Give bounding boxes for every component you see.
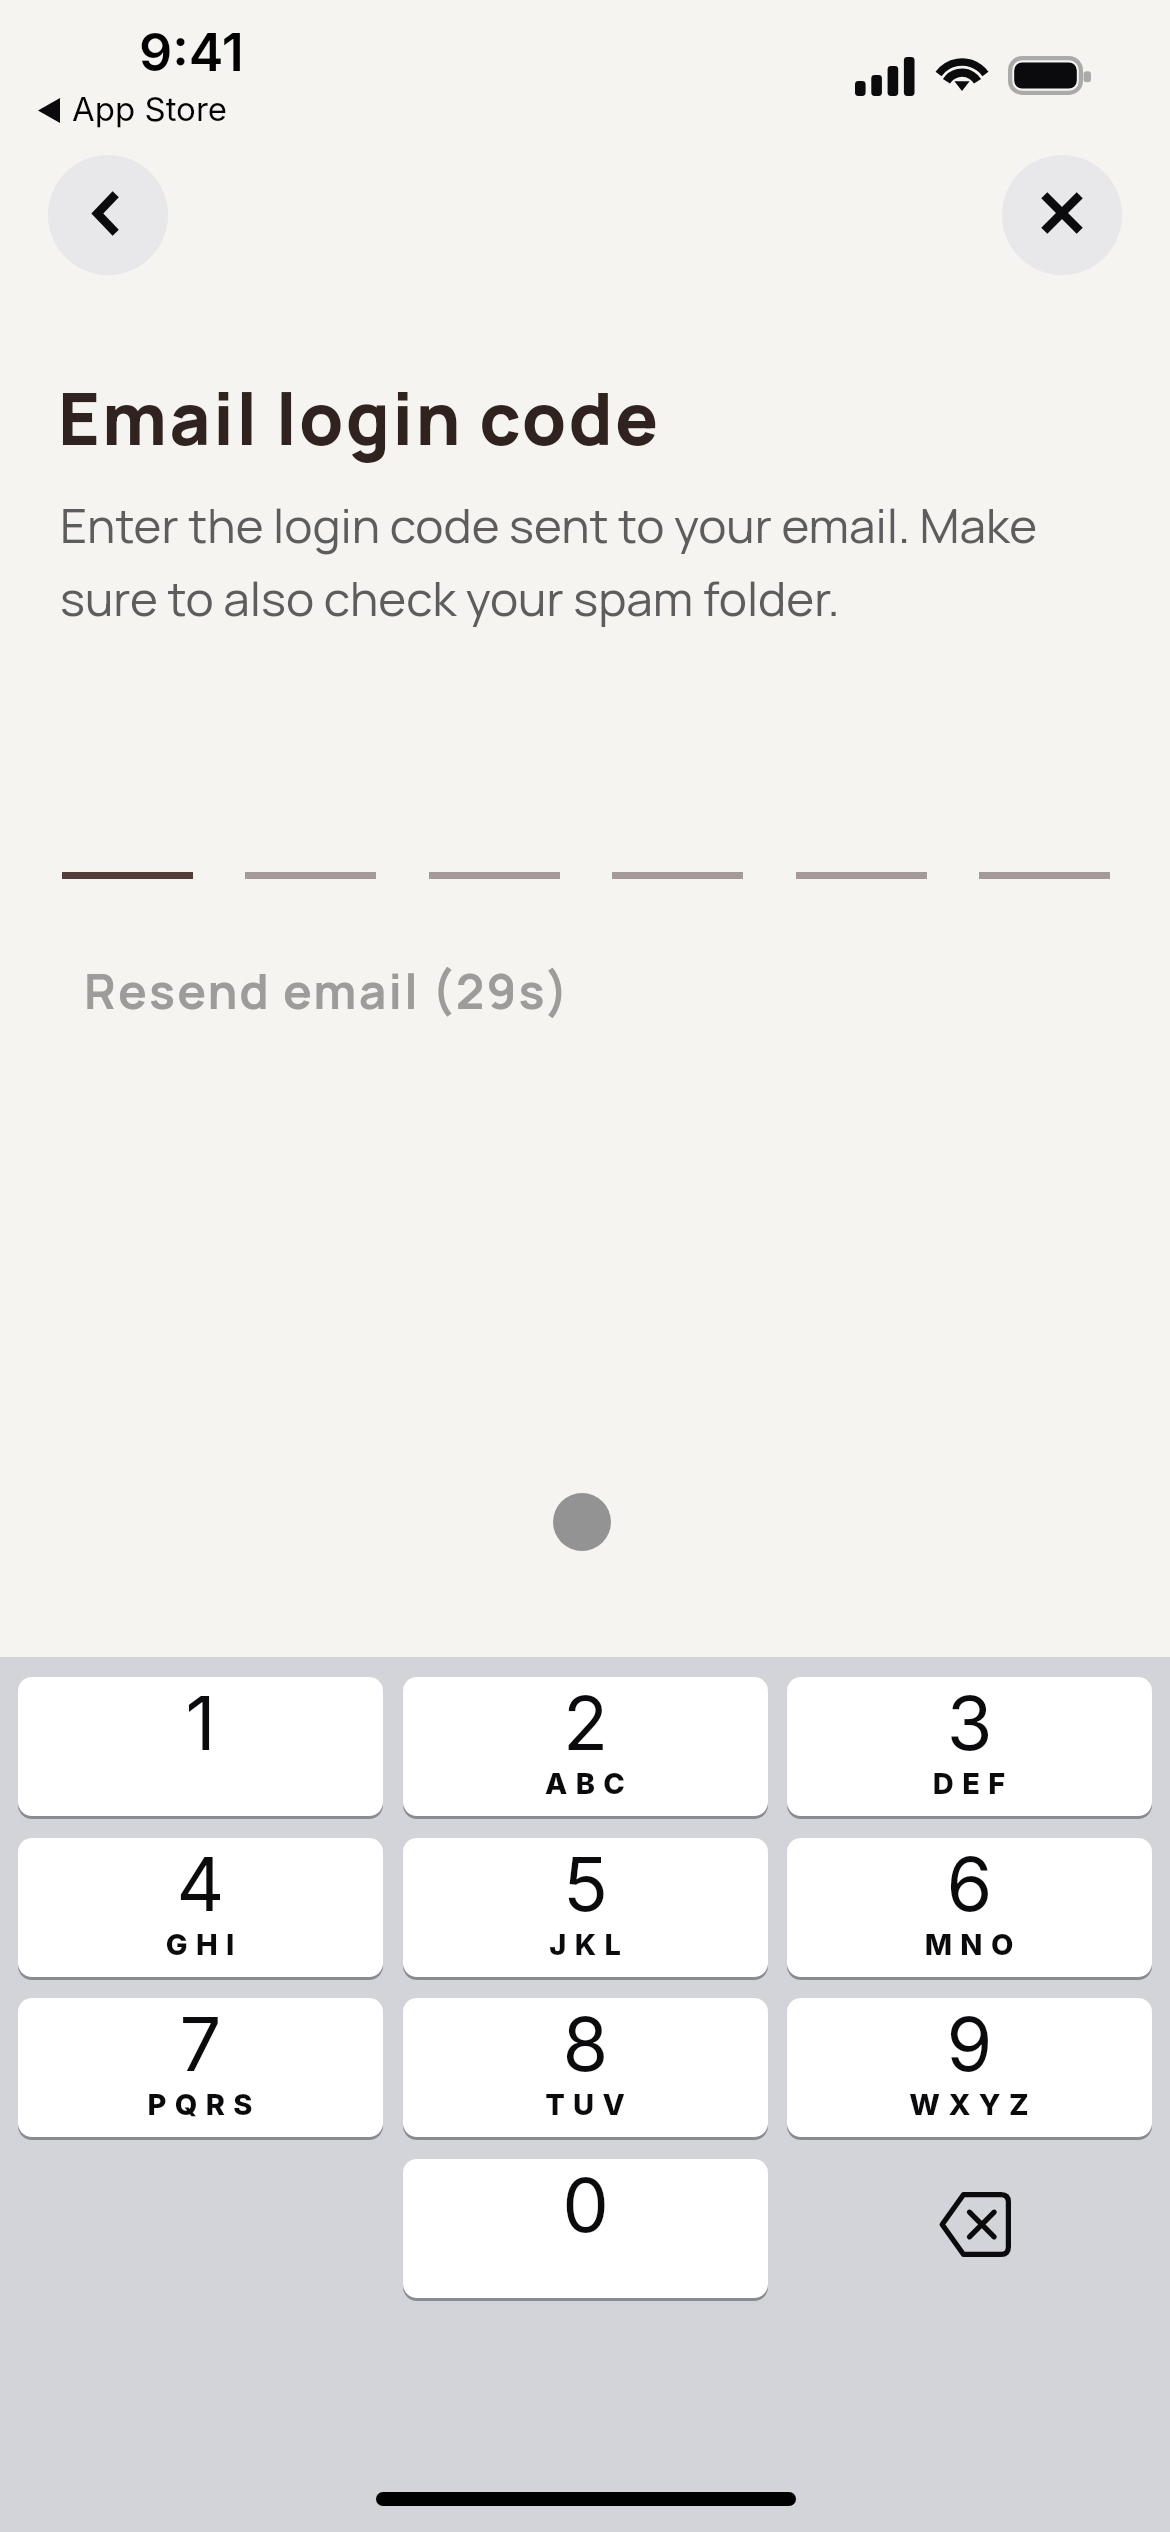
staticText: 0 [403,2160,768,2250]
staticText: Resend email (29s) [84,958,571,1024]
staticText: T U V [403,2087,768,2122]
button[interactable]: 5 [403,1838,768,1977]
staticText: G H I [18,1927,383,1962]
button[interactable]: 8 [403,1998,768,2137]
other: Battery [1008,56,1092,95]
staticText: 6 [787,1839,1152,1929]
button[interactable]: Resend email (29s) [84,958,571,1024]
staticText: App Store [72,89,228,129]
button[interactable]: 6 [787,1838,1152,1977]
staticText: 9 [787,1999,1152,2089]
staticText: D E F [787,1766,1152,1801]
button[interactable]: 3 [787,1677,1152,1816]
staticText: 9:41 [139,21,244,84]
other: Cellular signal [855,57,915,96]
button[interactable]: 1 [18,1677,383,1816]
staticText: 3 [787,1678,1152,1768]
staticText: 2 [403,1678,768,1768]
staticText: W X Y Z [787,2087,1152,2122]
staticText: J K L [403,1927,768,1962]
other: Wi-Fi [936,51,988,91]
staticText: 4 [18,1839,383,1929]
button[interactable]: App Store [30,85,186,125]
button[interactable]: 0 [403,2159,768,2298]
button[interactable]: Close [1002,155,1122,275]
button[interactable]: 2 [403,1677,768,1816]
button[interactable]: 7 [18,1998,383,2137]
staticText: P Q R S [18,2087,383,2122]
staticText: Email login code [58,369,661,466]
staticText: 5 [403,1839,768,1929]
button[interactable]: Delete [787,2159,1152,2298]
staticText: M N O [787,1927,1152,1962]
staticText: 7 [18,1999,383,2089]
button[interactable]: 9 [787,1998,1152,2137]
button[interactable]: Back [48,155,168,275]
staticText: 1 [18,1678,383,1768]
staticText: Enter the login code sent to your email.… [60,492,1070,630]
staticText: A B C [403,1766,768,1801]
button[interactable]: 4 [18,1838,383,1977]
staticText: 8 [403,1999,768,2089]
